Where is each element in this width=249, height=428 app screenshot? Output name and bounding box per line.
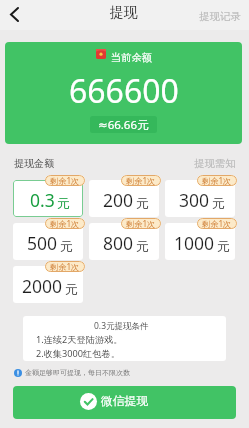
staticText: 剩余1次	[126, 175, 156, 186]
staticText: 剩余1次	[50, 261, 80, 272]
staticText: 元	[60, 238, 73, 254]
staticText: 元	[217, 238, 230, 254]
staticText: 剩余1次	[202, 175, 232, 186]
button[interactable]: 300	[165, 180, 235, 217]
staticText: 800	[103, 231, 134, 255]
staticText: 2.收集3000红包卷。	[36, 347, 120, 360]
staticText: 200	[103, 188, 134, 212]
staticText: 0.3元提现条件	[94, 320, 149, 332]
staticText: 1000	[174, 231, 215, 255]
staticText: 元	[136, 238, 149, 254]
staticText: 500	[27, 231, 58, 255]
button[interactable]: 500	[13, 223, 83, 260]
button[interactable]: 1000	[165, 223, 235, 260]
button[interactable]: 800	[89, 223, 159, 260]
staticText: 提现需知	[194, 157, 236, 170]
staticText: 金额足够即可提现，每日不限次数	[25, 368, 130, 377]
staticText: 666600	[69, 69, 179, 113]
button[interactable]: 提现记录	[191, 4, 249, 27]
staticText: ≈66.66元	[98, 117, 149, 133]
staticText: 提现金额	[14, 157, 54, 170]
staticText: 微信提现	[101, 394, 149, 409]
staticText: 剩余1次	[50, 175, 80, 186]
button[interactable]: 提现需知	[188, 153, 249, 174]
staticText: 当前余额	[111, 51, 152, 64]
button[interactable]: 2000	[13, 266, 83, 303]
staticText: 1.连续2天登陆游戏。	[36, 333, 123, 346]
staticText: 剩余1次	[202, 218, 232, 229]
staticText: 300	[179, 188, 210, 212]
button[interactable]: 微信提现	[13, 386, 236, 419]
staticText: 0.3	[30, 188, 55, 212]
staticText: 提现记录	[199, 10, 241, 23]
staticText: 元	[136, 195, 149, 211]
button[interactable]: Back	[2, 3, 26, 27]
button[interactable]: 0.3	[13, 180, 83, 217]
staticText: 剩余1次	[50, 218, 80, 229]
staticText: 2000	[22, 274, 63, 298]
button[interactable]: 200	[89, 180, 159, 217]
staticText: 提现	[110, 4, 138, 22]
staticText: 元	[212, 195, 225, 211]
staticText: 剩余1次	[126, 218, 156, 229]
staticText: 元	[65, 281, 78, 297]
staticText: 元	[57, 195, 70, 211]
